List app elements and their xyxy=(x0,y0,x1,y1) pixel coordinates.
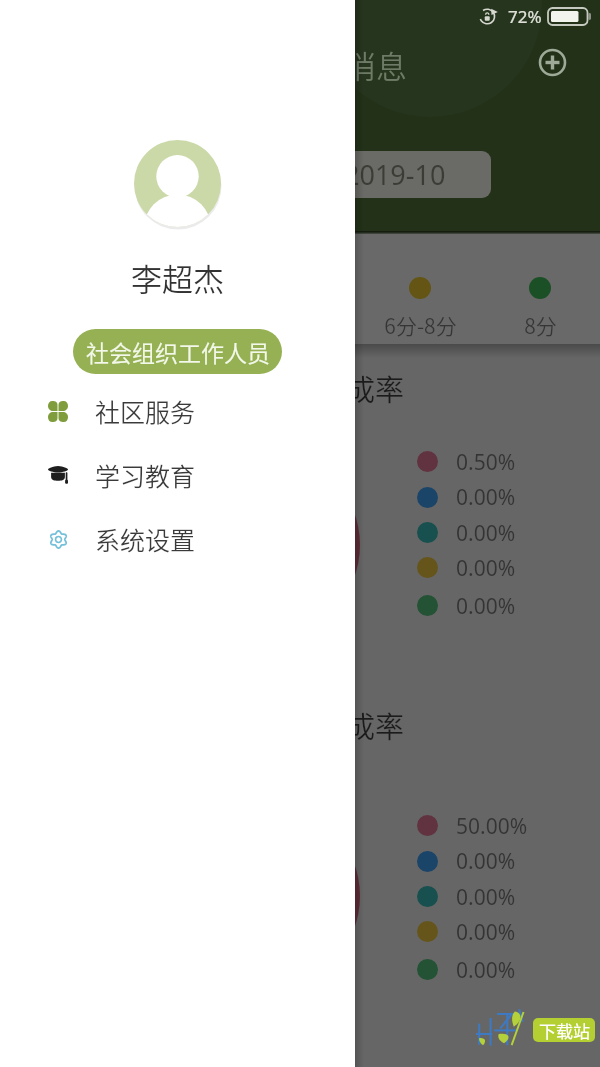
staticText: 0.00% xyxy=(456,883,516,912)
staticText: 0.00% xyxy=(456,956,516,985)
staticText: 完成率 xyxy=(317,367,405,409)
staticText: 李超杰 xyxy=(131,255,224,300)
button[interactable]: Profile photo xyxy=(134,140,221,227)
staticText: 完成率 xyxy=(317,704,405,746)
button[interactable]: 2019-10 xyxy=(337,151,491,198)
staticText: 50.00% xyxy=(456,812,528,841)
staticText: 我的消息 xyxy=(283,42,407,87)
staticText: 0.00% xyxy=(456,554,516,583)
staticText: 2019-10 xyxy=(344,156,446,193)
staticText: 8分 xyxy=(524,310,557,340)
staticText: 0.00% xyxy=(456,483,516,512)
staticText: 系统设置 xyxy=(95,521,196,557)
staticText: 下载站 xyxy=(539,1018,590,1042)
staticText: 0.00% xyxy=(456,592,516,621)
button[interactable]: New message xyxy=(534,44,571,81)
staticText: 学习教育 xyxy=(95,457,196,493)
staticText: 0.00% xyxy=(456,519,516,548)
button[interactable]: 社会组织工作人员 xyxy=(73,329,282,374)
button[interactable]: 系统设置 xyxy=(0,507,355,571)
staticText: 0.00% xyxy=(456,847,516,876)
staticText: 0.50% xyxy=(456,448,516,477)
staticText: 0.00% xyxy=(456,918,516,947)
button[interactable]: 社区服务 xyxy=(0,379,355,443)
staticText: 社区服务 xyxy=(95,393,196,429)
staticText: 社会组织工作人员 xyxy=(86,335,270,368)
staticText: 72% xyxy=(508,5,542,28)
button[interactable]: 学习教育 xyxy=(0,443,355,507)
staticText: 6分-8分 xyxy=(384,310,457,340)
